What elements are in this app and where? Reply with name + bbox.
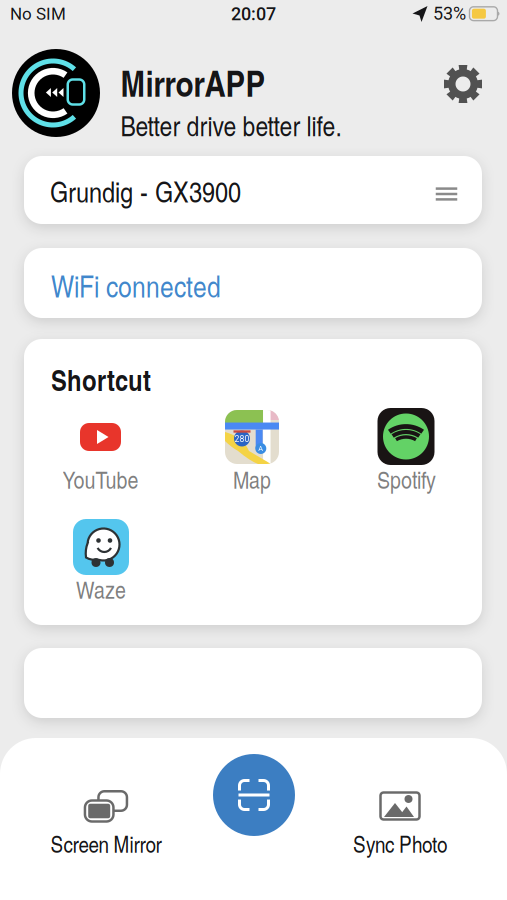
staticText: Screen Mirror xyxy=(50,828,161,859)
button[interactable]: Waze xyxy=(31,514,171,610)
staticText: 280 xyxy=(234,434,249,444)
staticText: 53% xyxy=(433,3,466,24)
staticText: No SIM xyxy=(10,4,66,24)
staticText: Spotify xyxy=(377,462,436,495)
button[interactable]: Spotify xyxy=(336,404,476,500)
button[interactable]: Screen Mirror xyxy=(31,756,181,868)
staticText: YouTube xyxy=(62,462,138,495)
button[interactable]: Grundig - GX3900 xyxy=(24,156,482,224)
staticText: Sync Photo xyxy=(353,828,447,859)
staticText: Shortcut xyxy=(51,359,151,400)
staticText: Better drive better life. xyxy=(120,106,341,144)
button[interactable]: Sync Photo xyxy=(325,756,475,868)
staticText: MirrorAPP xyxy=(120,57,265,108)
staticText: A xyxy=(258,444,263,453)
button[interactable]: 280 xyxy=(182,404,322,500)
staticText: Grundig - GX3900 xyxy=(50,171,241,211)
button[interactable]: YouTube xyxy=(30,404,170,500)
staticText: WiFi connected xyxy=(51,265,221,306)
button[interactable]: Settings xyxy=(441,62,485,106)
staticText: Waze xyxy=(76,572,126,605)
staticText: Map xyxy=(233,462,271,495)
staticText: 20:07 xyxy=(231,3,276,25)
button[interactable]: Scan xyxy=(213,754,295,836)
